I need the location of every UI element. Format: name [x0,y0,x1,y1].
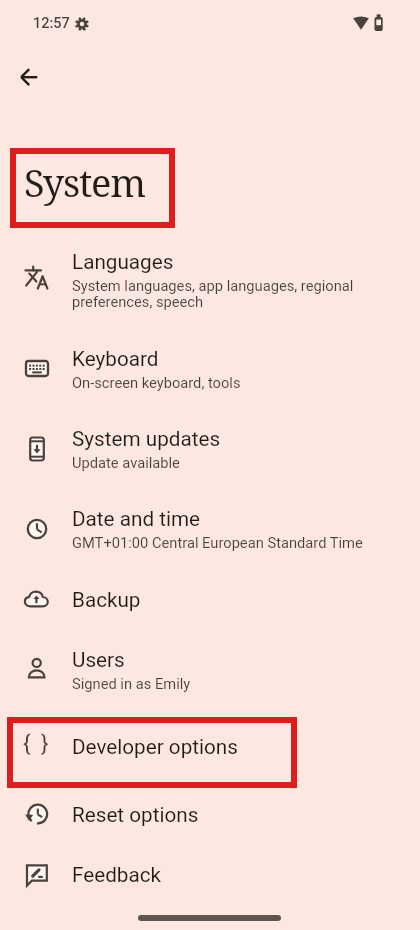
staticText: On-screen keyboard, tools [72,374,241,391]
button[interactable] [0,853,420,897]
staticText: Keyboard [72,347,159,371]
staticText: Reset options [72,803,199,827]
staticText: Backup [72,588,141,612]
staticText: System updates [72,427,221,451]
button[interactable] [12,59,48,95]
staticText: { } [23,731,51,757]
staticText: Languages [72,250,174,274]
staticText: Users [72,648,125,672]
staticText: System [24,156,145,208]
staticText: Feedback [72,863,162,887]
button[interactable] [0,579,420,623]
staticText: Date and time [72,507,201,531]
staticText: Signed in as Emily [72,675,191,692]
staticText: 12:57 [33,15,70,32]
staticText: Update available [72,454,180,471]
button[interactable] [0,648,420,700]
staticText: System languages, app languages, regiona… [72,277,354,311]
button[interactable] [0,727,420,771]
button[interactable] [0,257,420,319]
staticText: Developer options [72,735,238,759]
button[interactable] [0,428,420,480]
button[interactable] [0,508,420,560]
button[interactable] [0,347,420,399]
button[interactable] [0,793,420,837]
staticText: GMT+01:00 Central European Standard Time [72,534,363,551]
